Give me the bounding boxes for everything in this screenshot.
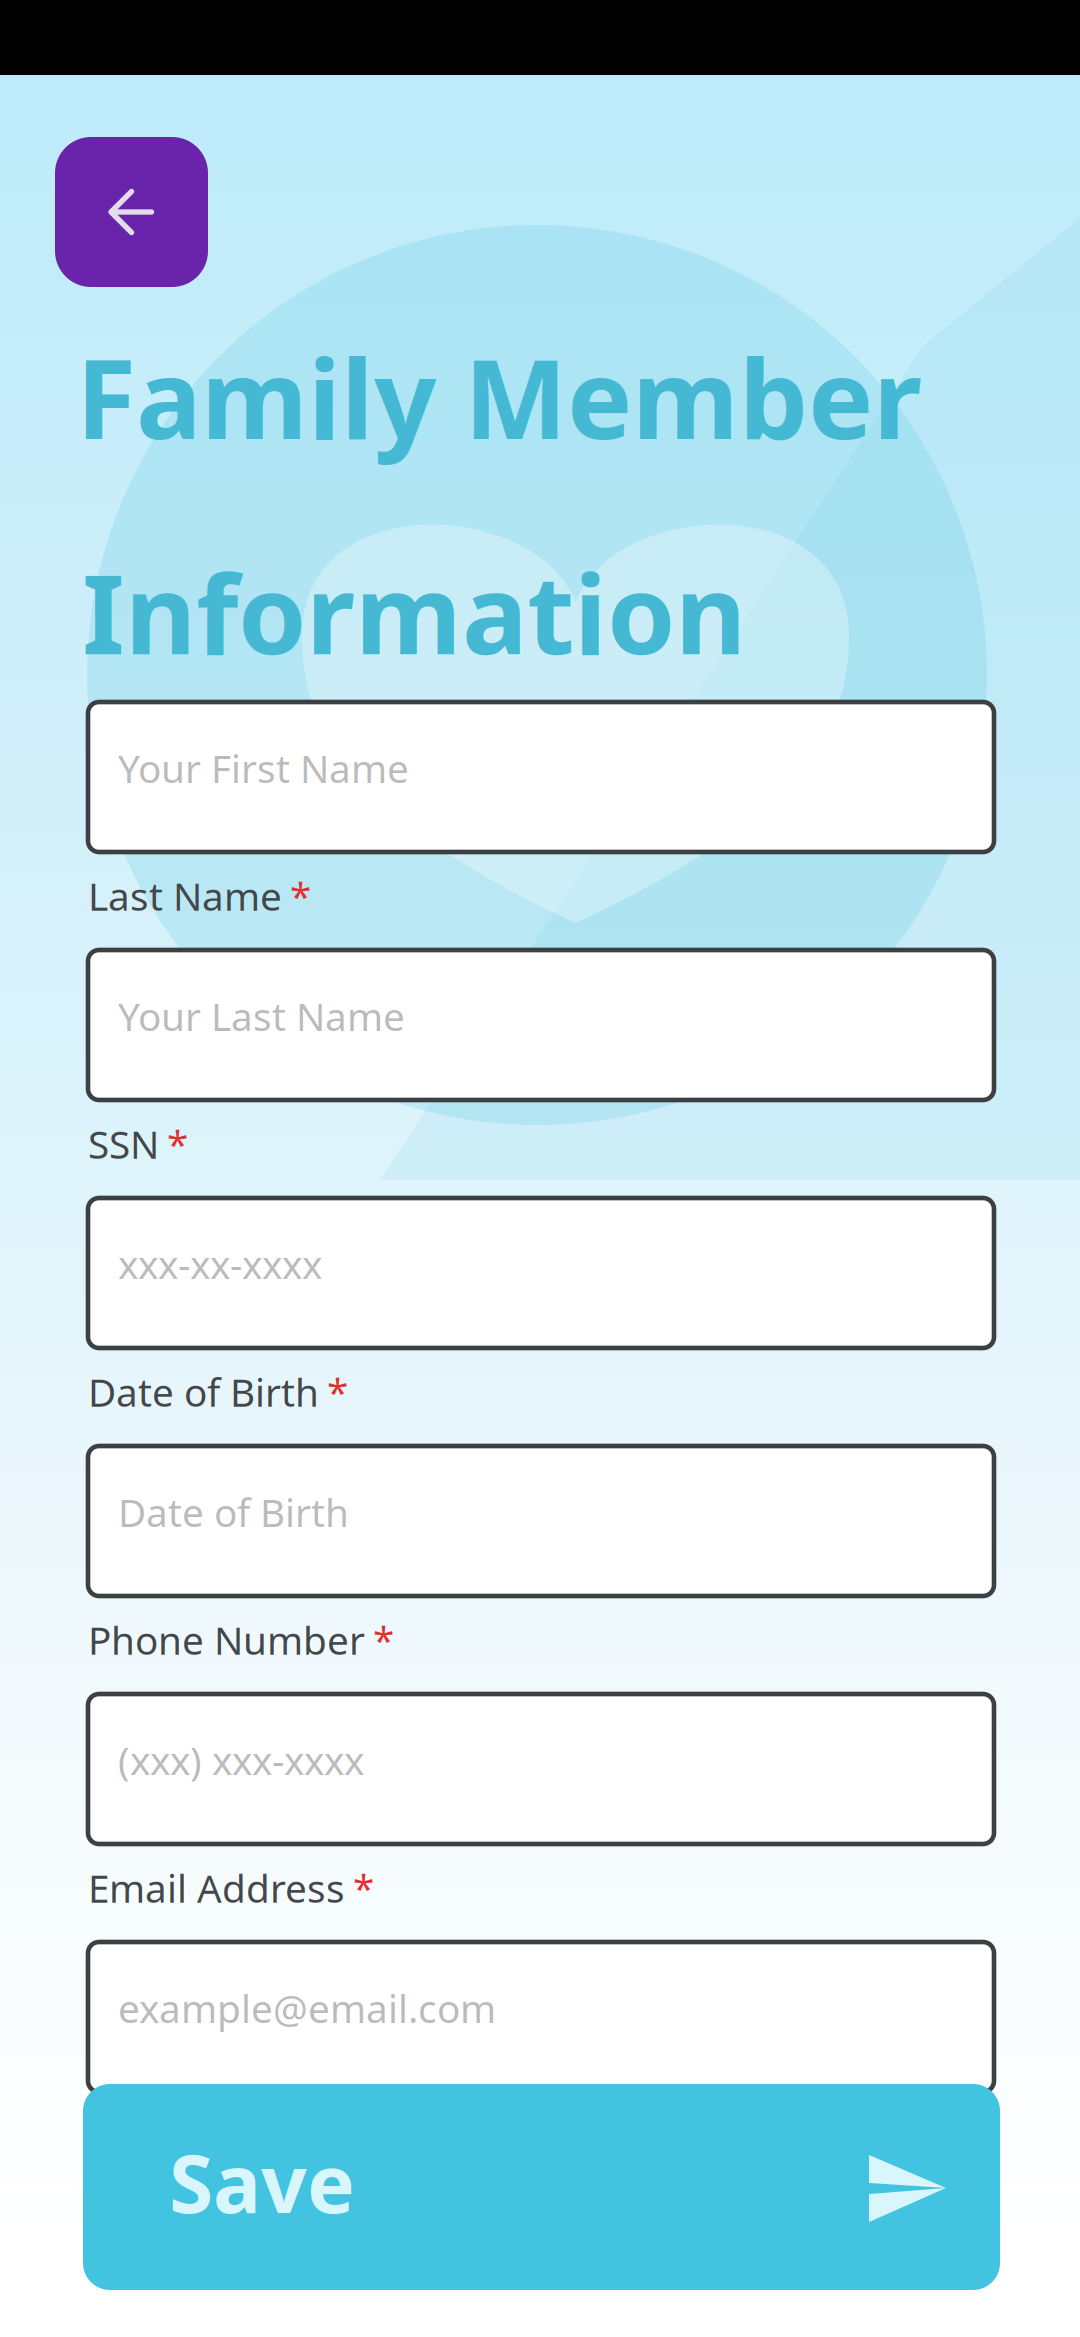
staticText: xxx-xx-xxxx — [118, 1238, 322, 1290]
staticText: Email Address — [88, 1862, 345, 1913]
staticText: Family Member — [76, 324, 922, 469]
staticText: (xxx) xxx-xxxx — [118, 1734, 364, 1786]
staticText: * — [167, 1118, 188, 1169]
staticText: example@email.com — [118, 1982, 496, 2034]
staticText: * — [353, 1862, 374, 1913]
staticText: * — [327, 1366, 348, 1417]
staticText: Date of Birth — [118, 1486, 349, 1538]
button[interactable]: Save — [83, 2084, 1000, 2290]
staticText: * — [290, 870, 311, 921]
staticText: Information — [82, 539, 746, 684]
staticText: Last Name — [88, 870, 282, 921]
button[interactable]: Back — [55, 137, 208, 287]
staticText: Phone Number — [88, 1614, 365, 1665]
staticText: Date of Birth — [88, 1366, 319, 1417]
staticText: Your Last Name — [118, 990, 405, 1042]
staticText: Your First Name — [118, 742, 409, 794]
staticText: Save — [169, 2129, 355, 2235]
staticText: * — [373, 1614, 394, 1665]
staticText: SSN — [88, 1118, 159, 1169]
